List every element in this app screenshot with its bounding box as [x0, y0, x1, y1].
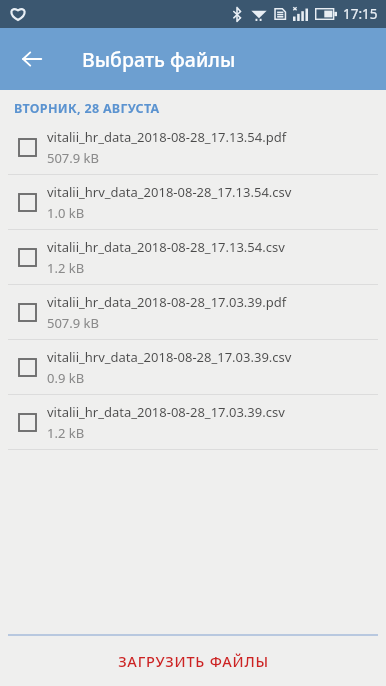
staticText: Выбрать файлы [82, 46, 236, 73]
staticText: vitalii_hr_data_2018-08-28_17.13.54.pdf [47, 128, 287, 146]
other: Выбрать файл [18, 138, 37, 157]
staticText: 17:15 [343, 5, 378, 23]
button[interactable]: Выбрать файл [0, 340, 386, 394]
other: Выбрать файл [18, 358, 37, 377]
staticText: vitalii_hr_data_2018-08-28_17.13.54.csv [47, 238, 285, 256]
staticText: vitalii_hr_data_2018-08-28_17.03.39.pdf [47, 293, 287, 311]
button[interactable]: Выбрать файл [0, 120, 386, 174]
staticText: vitalii_hr_data_2018-08-28_17.03.39.csv [47, 403, 285, 421]
staticText: 507.9 kB [47, 149, 100, 167]
button[interactable]: Выбрать файл [0, 175, 386, 229]
staticText: 0.9 kB [47, 369, 85, 387]
other: Выбрать файл [18, 413, 37, 432]
staticText: 1.2 kB [47, 259, 85, 277]
staticText: vitalii_hrv_data_2018-08-28_17.13.54.csv [47, 183, 292, 201]
other: Выбрать файл [18, 193, 37, 212]
other: Выбрать файл [18, 248, 37, 267]
button[interactable]: ЗАГРУЗИТЬ ФАЙЛЫ [0, 636, 386, 686]
button[interactable]: Выбрать файл [0, 395, 386, 449]
staticText: 1.0 kB [47, 204, 85, 222]
staticText: 507.9 kB [47, 314, 100, 332]
button[interactable]: Выбрать файл [0, 230, 386, 284]
staticText: 1.2 kB [47, 424, 85, 442]
staticText: ВТОРНИК, 28 АВГУСТА [14, 100, 160, 117]
other: Выбрать файл [18, 303, 37, 322]
button[interactable]: Назад [10, 37, 54, 81]
staticText: ЗАГРУЗИТЬ ФАЙЛЫ [118, 651, 269, 671]
staticText: vitalii_hrv_data_2018-08-28_17.03.39.csv [47, 348, 292, 366]
button[interactable]: Выбрать файл [0, 285, 386, 339]
